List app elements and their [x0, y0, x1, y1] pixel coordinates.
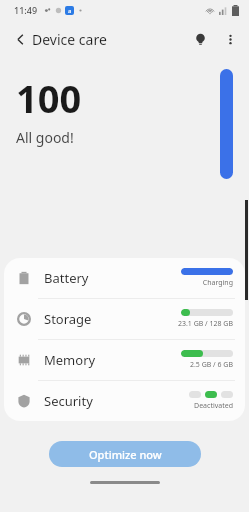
button[interactable]: Security — [4, 381, 245, 421]
button[interactable]: Optimize now — [49, 441, 201, 467]
staticText: 23.1 GB / 128 GB — [177, 319, 233, 329]
button[interactable]: More options — [215, 24, 245, 54]
button[interactable]: Storage — [4, 299, 245, 339]
staticText: Charging — [202, 278, 233, 288]
staticText: Optimize now — [89, 447, 162, 462]
staticText: 2.5 GB / 6 GB — [189, 360, 233, 370]
staticText: a — [68, 7, 72, 15]
button[interactable]: Memory — [4, 340, 245, 380]
button[interactable]: Back — [6, 25, 34, 53]
button[interactable]: Battery — [4, 258, 245, 298]
staticText: All good! — [16, 128, 74, 147]
staticText: 11:49 — [14, 4, 38, 16]
staticText: Deactivated — [194, 401, 233, 411]
staticText: Battery — [44, 269, 89, 287]
staticText: Security — [44, 392, 93, 410]
button[interactable]: Tips — [185, 24, 215, 54]
staticText: Memory — [44, 351, 96, 369]
staticText: Device care — [32, 30, 107, 49]
staticText: 100 — [16, 72, 82, 124]
staticText: Storage — [44, 310, 92, 328]
